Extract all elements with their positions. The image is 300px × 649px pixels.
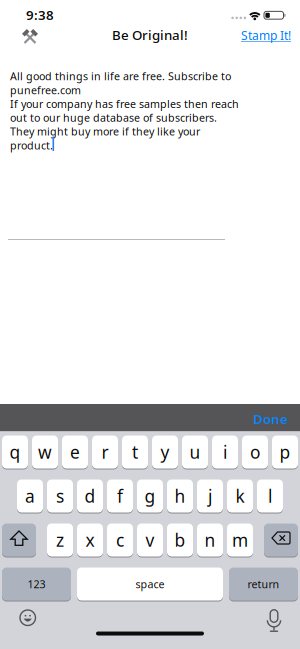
staticText: m — [232, 528, 248, 551]
staticText: y — [160, 440, 169, 463]
staticText: x — [85, 528, 94, 551]
staticText: n — [204, 528, 215, 551]
staticText: Done — [253, 410, 288, 428]
button[interactable]: 123 — [2, 567, 71, 601]
staticText: l — [268, 484, 272, 507]
staticText: a — [25, 484, 35, 507]
staticText: z — [56, 528, 64, 551]
staticText: product. — [10, 138, 53, 152]
staticText: 9:38 — [26, 6, 54, 24]
button[interactable]: k — [227, 479, 253, 513]
staticText: s — [56, 484, 64, 507]
button[interactable]: Done — [253, 410, 288, 428]
button[interactable]: t — [122, 435, 148, 469]
button[interactable]: Shift — [2, 523, 36, 557]
staticText: c — [116, 528, 124, 551]
button[interactable]: m — [227, 523, 253, 557]
button[interactable]: p — [272, 435, 298, 469]
staticText: b — [174, 528, 185, 551]
staticText: o — [250, 440, 260, 463]
staticText: p — [279, 440, 290, 463]
staticText: e — [70, 440, 80, 463]
staticText: v — [145, 528, 154, 551]
button[interactable]: Tools — [21, 28, 39, 45]
button[interactable]: e — [62, 435, 88, 469]
button[interactable]: n — [197, 523, 223, 557]
button[interactable]: Delete — [264, 523, 298, 557]
staticText: j — [208, 484, 212, 507]
staticText: g — [144, 484, 155, 507]
button[interactable]: s — [47, 479, 73, 513]
button[interactable]: y — [152, 435, 178, 469]
staticText: u — [189, 440, 200, 463]
staticText: return — [247, 577, 279, 591]
staticText: If your company has free samples then re… — [10, 97, 239, 111]
staticText: w — [38, 440, 52, 463]
button[interactable]: w — [32, 435, 58, 469]
staticText: f — [117, 484, 123, 507]
button[interactable]: r — [92, 435, 118, 469]
button[interactable]: Emoji — [20, 610, 35, 625]
button[interactable]: l — [257, 479, 283, 513]
button[interactable]: z — [47, 523, 73, 557]
button[interactable]: u — [182, 435, 208, 469]
button[interactable]: space — [77, 567, 223, 601]
staticText: i — [223, 440, 227, 463]
button[interactable]: c — [107, 523, 133, 557]
button[interactable]: d — [77, 479, 103, 513]
staticText: k — [235, 484, 244, 507]
staticText: Stamp It! — [241, 27, 291, 43]
button[interactable]: Stamp It! — [231, 27, 291, 43]
staticText: 123 — [27, 577, 45, 591]
staticText: t — [132, 440, 138, 463]
button[interactable]: a — [17, 479, 43, 513]
button[interactable]: o — [242, 435, 268, 469]
staticText: space — [135, 577, 164, 591]
button[interactable]: Dictate — [266, 609, 282, 632]
staticText: d — [84, 484, 95, 507]
staticText: q — [9, 440, 20, 463]
staticText: r — [101, 440, 108, 463]
staticText: punefree.com — [10, 83, 81, 97]
button[interactable]: return — [229, 567, 298, 601]
button[interactable]: q — [2, 435, 28, 469]
staticText: They might buy more if they like your — [10, 124, 200, 139]
button[interactable]: f — [107, 479, 133, 513]
button[interactable]: x — [77, 523, 103, 557]
button[interactable]: v — [137, 523, 163, 557]
button[interactable]: i — [212, 435, 238, 469]
staticText: out to our huge database of subscribers. — [10, 111, 217, 125]
button[interactable]: g — [137, 479, 163, 513]
button[interactable]: h — [167, 479, 193, 513]
staticText: h — [174, 484, 185, 507]
button[interactable]: b — [167, 523, 193, 557]
staticText: Be Original! — [112, 26, 188, 44]
staticText: All good things in life are free. Subscr… — [10, 69, 231, 83]
button[interactable]: j — [197, 479, 223, 513]
